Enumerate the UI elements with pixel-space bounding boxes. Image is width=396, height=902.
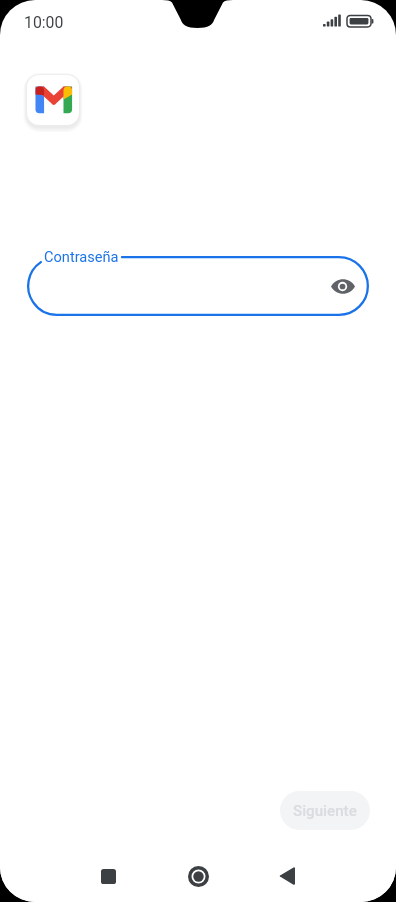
staticText: 10:00 <box>24 13 64 32</box>
button[interactable]: Inicio <box>184 862 212 890</box>
button[interactable]: Contraseña <box>27 256 369 316</box>
button[interactable]: Atrás <box>273 862 301 890</box>
button[interactable]: Siguiente <box>280 791 370 830</box>
button[interactable]: Mostrar contraseña <box>323 266 363 306</box>
staticText: Contraseña <box>44 248 119 265</box>
button[interactable]: Recientes <box>94 862 122 890</box>
staticText: Siguiente <box>293 802 357 820</box>
